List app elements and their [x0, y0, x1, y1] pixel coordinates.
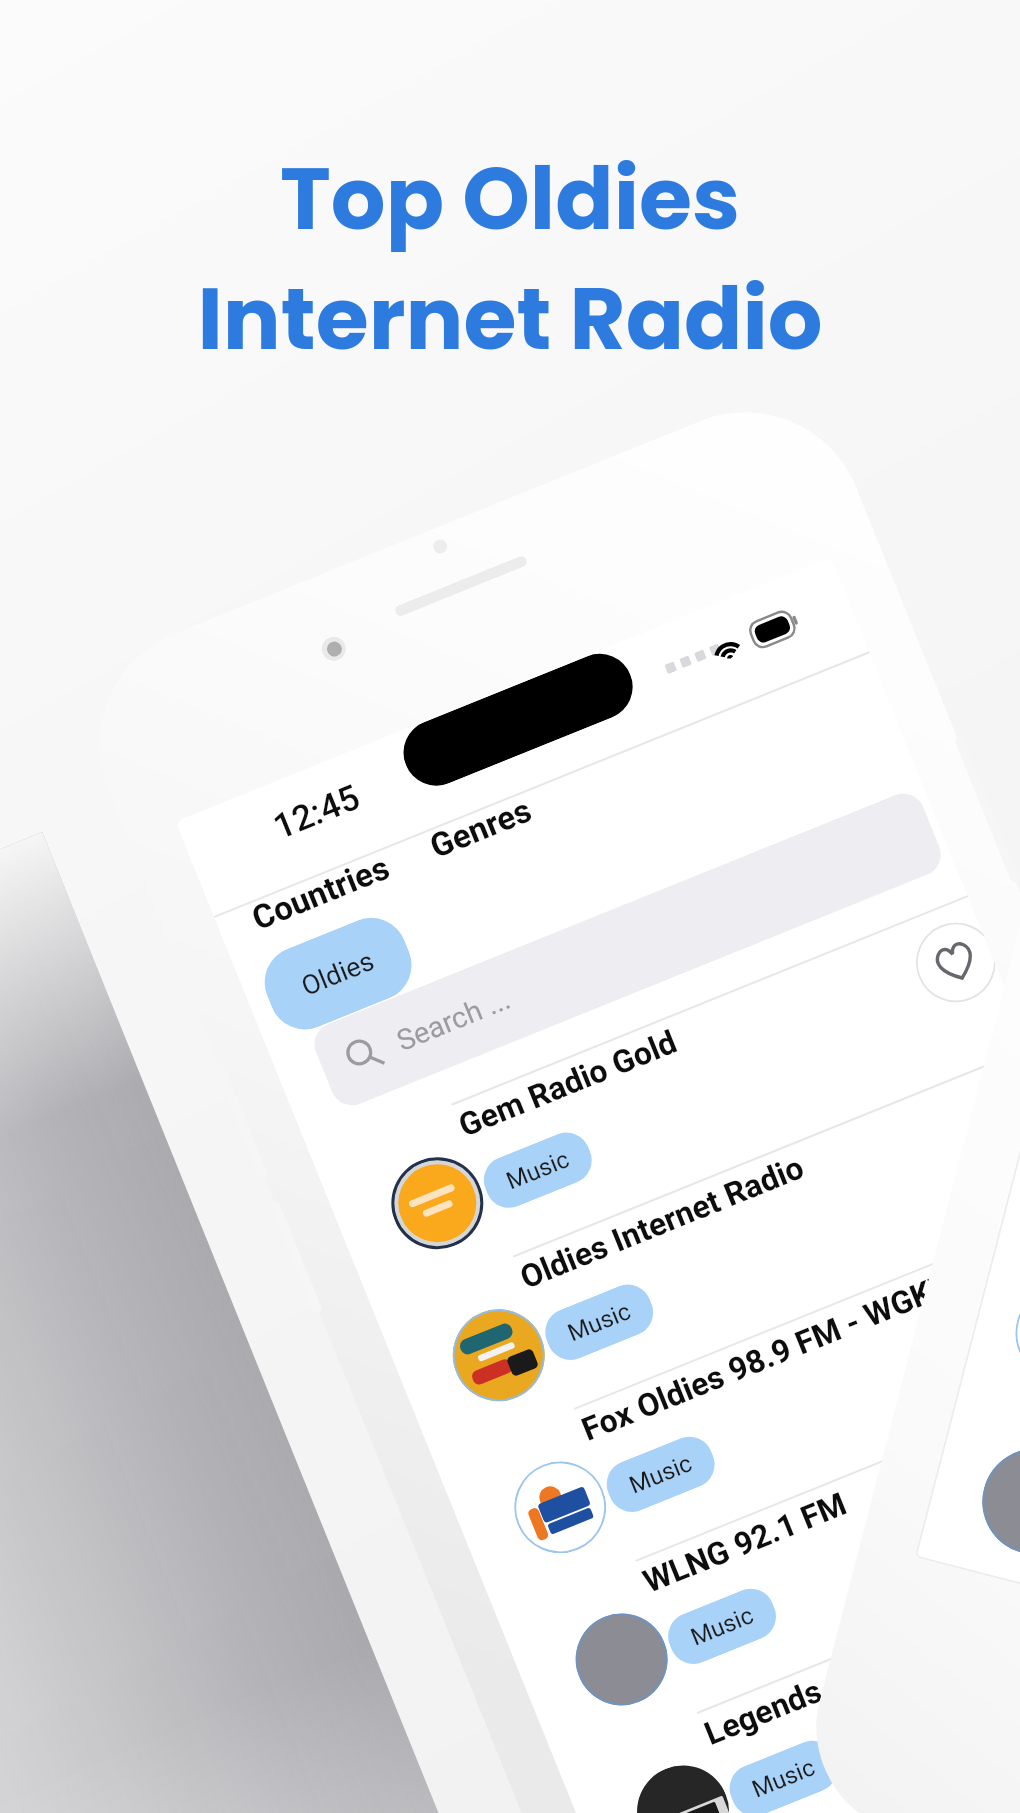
staticText: WLNG 92.1 FM: [638, 1357, 1020, 1601]
button[interactable]: Oldies Internet Radio: [373, 1047, 1020, 1464]
button[interactable]: Search ...: [308, 787, 947, 1112]
staticText: Gem Radio Gold: [453, 901, 984, 1145]
staticText: Top Oldies: [280, 139, 740, 259]
button[interactable]: Gem Radio Gold: [312, 895, 1020, 1312]
button[interactable]: Oldies: [254, 907, 422, 1040]
staticText: Oldies: [297, 945, 379, 1003]
staticText: Fox Oldies 98.9 FM - WGKX: [576, 1205, 1020, 1449]
button[interactable]: Fox Oldies 98.9 FM - WGKX: [435, 1199, 1020, 1616]
staticText: Music: [625, 1449, 696, 1499]
button[interactable]: Genres: [424, 790, 537, 866]
staticText: 12:45: [268, 777, 366, 848]
staticText: Music: [687, 1601, 757, 1651]
staticText: Countries: [246, 847, 396, 938]
button[interactable]: Favorites: [904, 912, 1004, 1014]
staticText: Internet Radio: [197, 259, 823, 379]
staticText: Music: [748, 1753, 819, 1804]
staticText: Legends 102.7: [699, 1509, 1020, 1753]
staticText: Genres: [424, 790, 537, 866]
staticText: Search ...: [392, 981, 516, 1058]
button[interactable]: Countries: [246, 847, 396, 938]
button[interactable]: Legends 102.7: [558, 1503, 1020, 1813]
staticText: Oldies Internet Radio: [515, 1053, 1020, 1297]
staticText: Music: [502, 1145, 573, 1195]
button[interactable]: WLNG 92.1 FM: [496, 1351, 1020, 1768]
staticText: Music: [564, 1297, 635, 1347]
